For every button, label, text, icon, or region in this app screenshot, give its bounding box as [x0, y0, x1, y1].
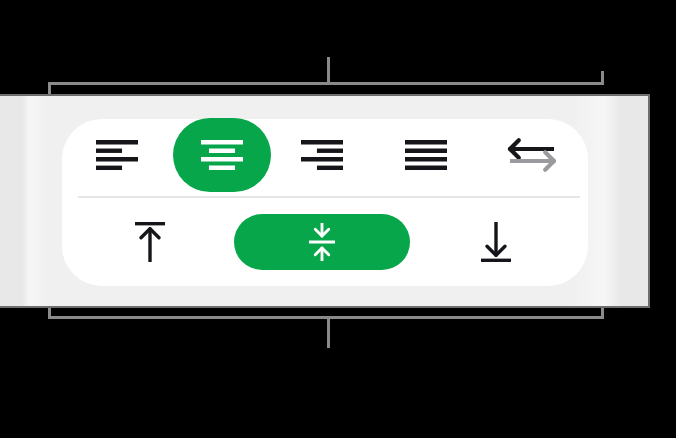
button[interactable]: Align bottom	[481, 222, 511, 262]
button[interactable]: Text direction	[510, 135, 554, 175]
button[interactable]: Align middle, selected	[234, 214, 410, 270]
button[interactable]: Align right	[301, 140, 343, 170]
button[interactable]: Align top	[135, 222, 165, 262]
button[interactable]: Justify	[405, 140, 447, 170]
button[interactable]: Center align, selected	[173, 118, 271, 192]
button[interactable]: Align left	[96, 140, 138, 170]
